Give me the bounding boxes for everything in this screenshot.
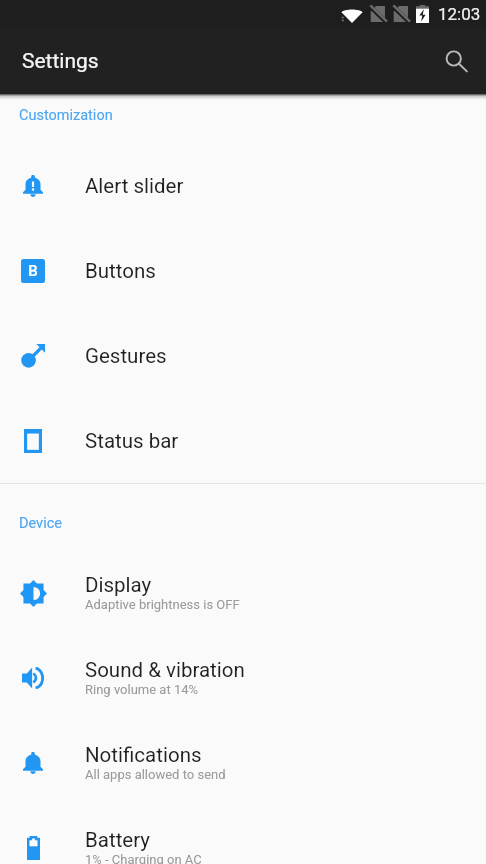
button[interactable]: Display	[0, 550, 486, 635]
button[interactable]: Gestures	[0, 313, 486, 398]
button[interactable]: Alert slider	[0, 143, 486, 228]
staticText: 1% - Charging on AC	[85, 852, 202, 864]
staticText: Ring volume at 14%	[85, 682, 199, 697]
staticText: Device	[19, 515, 62, 532]
staticText: Gestures	[85, 344, 167, 368]
staticText: Status bar	[85, 429, 179, 453]
button[interactable]: Battery	[0, 805, 486, 864]
button[interactable]: Status bar	[0, 398, 486, 483]
staticText: Adaptive brightness is OFF	[85, 597, 240, 612]
staticText: Notifications	[85, 743, 202, 767]
button[interactable]: Search	[432, 37, 480, 85]
staticText: 12:03	[438, 4, 481, 24]
button[interactable]: B	[0, 228, 486, 313]
staticText: Display	[85, 573, 152, 597]
button[interactable]: Sound & vibration	[0, 635, 486, 720]
staticText: Alert slider	[85, 174, 184, 198]
staticText: B	[28, 262, 38, 280]
staticText: All apps allowed to send	[85, 767, 226, 782]
staticText: Settings	[22, 49, 99, 74]
staticText: Sound & vibration	[85, 658, 245, 682]
staticText: Customization	[19, 107, 113, 124]
staticText: Battery	[85, 828, 151, 852]
button[interactable]: Notifications	[0, 720, 486, 805]
staticText: Buttons	[85, 259, 156, 283]
